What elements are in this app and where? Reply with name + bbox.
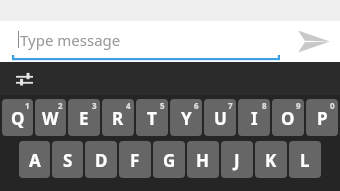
button[interactable]: Send xyxy=(291,21,335,62)
button[interactable]: S xyxy=(52,141,83,178)
button[interactable]: J xyxy=(221,141,253,178)
staticText: G xyxy=(163,149,176,172)
staticText: 1 xyxy=(25,100,30,111)
staticText: 2 xyxy=(58,100,63,111)
staticText: Q xyxy=(11,107,25,130)
staticText: O xyxy=(281,107,295,130)
staticText: W xyxy=(42,107,59,130)
button[interactable]: H xyxy=(187,141,219,178)
button[interactable]: L xyxy=(289,141,321,178)
staticText: L xyxy=(300,149,310,172)
staticText: A xyxy=(29,149,41,172)
button[interactable]: Keyboard settings xyxy=(8,64,40,94)
staticText: K xyxy=(265,149,277,172)
button[interactable]: P xyxy=(306,99,338,136)
staticText: 5 xyxy=(160,100,165,111)
staticText: 0 xyxy=(330,100,335,111)
staticText: 7 xyxy=(228,100,233,111)
staticText: P xyxy=(317,107,328,130)
button[interactable]: Q xyxy=(2,99,33,136)
staticText: Y xyxy=(181,107,192,130)
staticText: 8 xyxy=(262,100,267,111)
staticText: 9 xyxy=(296,100,301,111)
staticText: U xyxy=(214,107,227,130)
button[interactable]: Type message xyxy=(12,21,280,62)
staticText: E xyxy=(79,107,89,130)
button[interactable]: U xyxy=(204,99,236,136)
button[interactable]: O xyxy=(272,99,304,136)
staticText: F xyxy=(130,149,140,172)
staticText: Type message xyxy=(20,30,121,50)
button[interactable]: Y xyxy=(170,99,202,136)
staticText: J xyxy=(234,149,240,172)
staticText: D xyxy=(95,149,108,172)
button[interactable]: R xyxy=(102,99,134,136)
button[interactable]: T xyxy=(136,99,168,136)
staticText: 6 xyxy=(194,100,199,111)
button[interactable]: I xyxy=(238,99,270,136)
staticText: 4 xyxy=(126,100,131,111)
staticText: R xyxy=(112,107,124,130)
staticText: T xyxy=(147,107,157,130)
button[interactable]: F xyxy=(119,141,151,178)
button[interactable]: W xyxy=(35,99,66,136)
staticText: H xyxy=(196,149,210,172)
staticText: S xyxy=(63,149,73,172)
button[interactable]: A xyxy=(19,141,50,178)
button[interactable]: E xyxy=(68,99,100,136)
staticText: I xyxy=(251,107,258,130)
button[interactable]: K xyxy=(255,141,287,178)
button[interactable]: D xyxy=(85,141,117,178)
button[interactable]: G xyxy=(153,141,185,178)
staticText: 3 xyxy=(92,100,97,111)
